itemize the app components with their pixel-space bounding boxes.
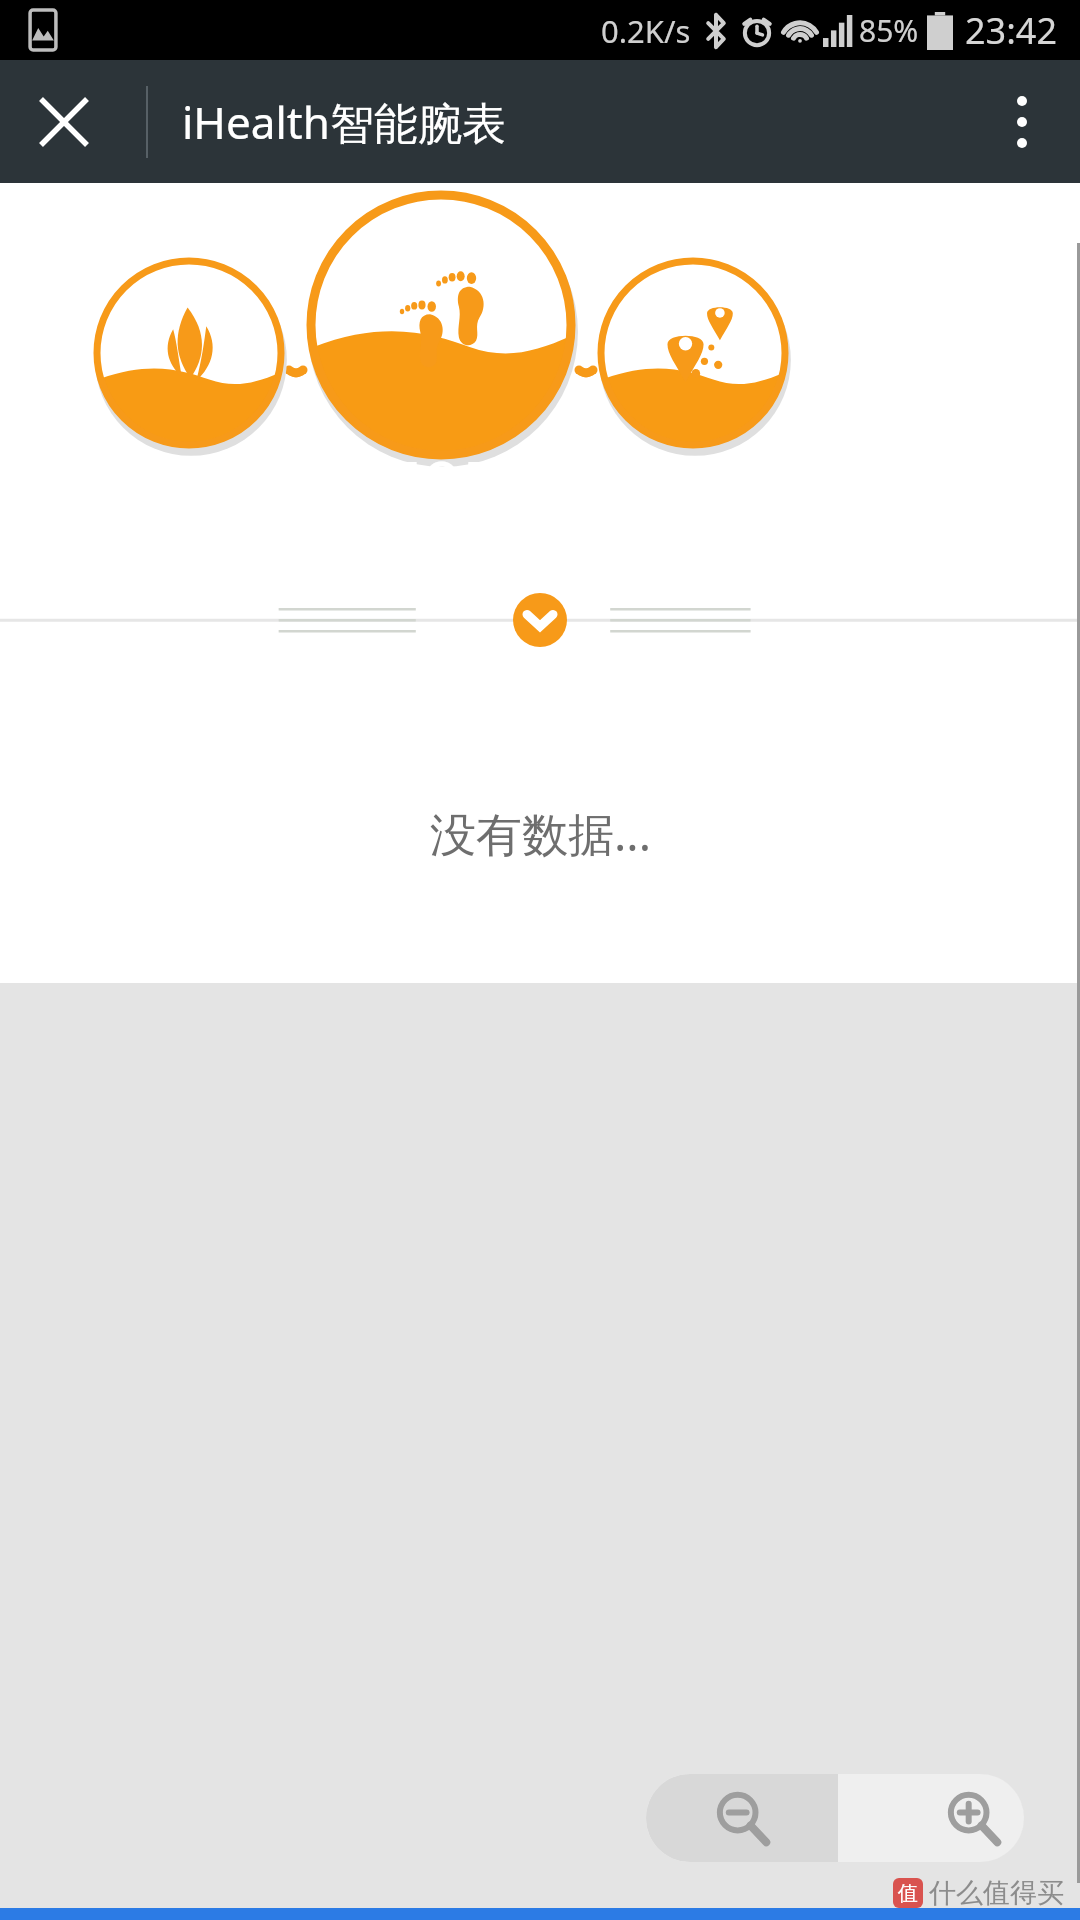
- button[interactable]: 2888: [96, 445, 284, 512]
- staticText: 没有数据...: [430, 802, 651, 865]
- staticText: 什么值得买: [929, 1876, 1064, 1910]
- staticText: iHealth智能腕表: [182, 92, 506, 152]
- button[interactable]: Zoom in: [838, 1774, 1024, 1862]
- staticText: 15952: [348, 438, 537, 528]
- button[interactable]: 15952: [313, 438, 571, 528]
- button[interactable]: 12.1: [600, 445, 788, 512]
- staticText: 12.1: [645, 445, 743, 512]
- button[interactable]: More options: [974, 74, 1070, 170]
- staticText: 0.2K/s: [601, 10, 691, 52]
- staticText: 23:42: [965, 6, 1058, 55]
- staticText: 85%: [859, 10, 919, 51]
- staticText: 值: [898, 1881, 918, 1906]
- button[interactable]: Close: [20, 78, 108, 166]
- button[interactable]: Expand: [513, 593, 567, 647]
- button[interactable]: Zoom out: [646, 1774, 838, 1862]
- staticText: 2888: [134, 445, 247, 512]
